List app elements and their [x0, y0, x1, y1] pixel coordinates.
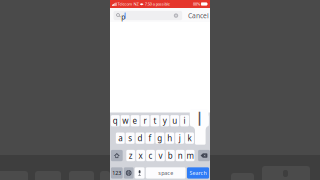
button[interactable]: Shift — [111, 150, 123, 161]
button[interactable]: Dictate — [135, 167, 144, 179]
button[interactable]: Search — [187, 167, 209, 179]
staticText: 7.50 a possible — [145, 1, 170, 7]
button[interactable]: m — [186, 150, 194, 161]
button[interactable]: Next keyboard — [124, 167, 134, 179]
button[interactable]: u — [170, 115, 179, 126]
staticText: y — [163, 115, 167, 126]
button[interactable]: z — [126, 150, 135, 161]
staticText: j — [179, 133, 181, 143]
staticText: r — [143, 115, 146, 126]
button[interactable]: i — [180, 115, 189, 126]
button[interactable]: Delete — [198, 150, 210, 161]
button[interactable]: x — [136, 150, 145, 161]
staticText: v — [158, 150, 162, 161]
staticText: x — [139, 150, 143, 161]
staticText: h — [167, 133, 172, 143]
staticText: p — [121, 13, 125, 21]
staticText: i — [184, 115, 186, 126]
button[interactable]: g — [155, 132, 164, 144]
staticText: b — [168, 150, 173, 161]
staticText: g — [157, 133, 162, 143]
staticText: s — [128, 133, 132, 143]
button[interactable]: t — [150, 115, 159, 126]
staticText: 88% — [193, 1, 200, 7]
staticText: n — [178, 150, 183, 161]
button[interactable]: r — [141, 115, 149, 126]
staticText: q — [113, 115, 118, 126]
button[interactable]: e — [131, 115, 139, 126]
staticText: k — [187, 133, 191, 143]
button[interactable]: v — [156, 150, 165, 161]
button[interactable]: f — [146, 132, 154, 144]
button[interactable]: k — [185, 132, 194, 144]
staticText: Search — [190, 169, 207, 176]
staticText: t — [153, 115, 156, 126]
button[interactable]: o — [190, 115, 199, 126]
button[interactable]: s — [126, 132, 135, 144]
button[interactable]: 123 — [111, 167, 123, 179]
button[interactable]: space — [146, 167, 186, 179]
button[interactable]: w — [121, 115, 130, 126]
button[interactable]: a — [116, 132, 125, 144]
staticText: Cancel — [188, 11, 209, 20]
staticText: a — [118, 133, 122, 143]
staticText: z — [129, 150, 133, 161]
staticText: space — [158, 169, 173, 176]
staticText: 123 — [112, 169, 121, 176]
button[interactable]: j — [175, 132, 184, 144]
button[interactable]: h — [165, 132, 174, 144]
staticText: e — [133, 115, 138, 126]
staticText: l — [197, 107, 201, 130]
button[interactable]: n — [176, 150, 185, 161]
button[interactable]: p — [200, 115, 209, 126]
button[interactable]: c — [146, 150, 155, 161]
button[interactable]: q — [111, 115, 120, 126]
staticText: u — [172, 115, 177, 126]
staticText: w — [122, 115, 128, 126]
staticText: m — [187, 150, 194, 161]
button[interactable]: y — [160, 115, 169, 126]
staticText: d — [138, 133, 143, 143]
staticText: Telecom NZ — [117, 1, 138, 7]
staticText: f — [148, 133, 151, 143]
button[interactable]: b — [166, 150, 175, 161]
staticText: c — [148, 150, 152, 161]
button[interactable]: d — [136, 132, 144, 144]
button[interactable]: Cancel — [188, 11, 210, 20]
